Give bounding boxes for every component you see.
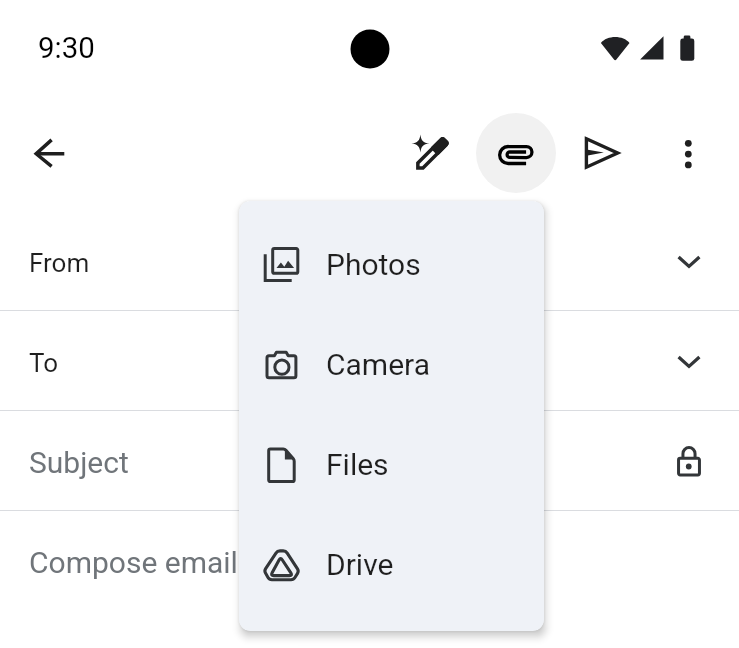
button[interactable]: Compose email xyxy=(0,511,739,610)
button[interactable]: Camera xyxy=(239,314,544,414)
staticText: Files xyxy=(326,447,389,482)
button[interactable]: To xyxy=(0,311,739,410)
button[interactable]: Back xyxy=(10,113,90,193)
button[interactable]: Expand recipients xyxy=(649,321,729,401)
staticText: From xyxy=(29,248,90,278)
staticText: 9:30 xyxy=(38,31,95,66)
button[interactable]: Drive xyxy=(239,514,544,614)
button[interactable]: Subject xyxy=(0,411,739,510)
staticText: Photos xyxy=(326,247,421,282)
button[interactable]: More options xyxy=(648,113,728,193)
staticText: Compose email xyxy=(29,545,238,580)
button[interactable]: Send xyxy=(562,113,642,193)
button[interactable]: Photos xyxy=(239,214,544,314)
button[interactable]: Files xyxy=(239,414,544,514)
button[interactable]: Smart compose xyxy=(390,112,470,192)
staticText: Subject xyxy=(29,445,129,480)
staticText: Camera xyxy=(326,347,430,382)
button[interactable]: Confidential mode xyxy=(649,421,729,501)
button[interactable]: From xyxy=(0,211,739,310)
staticText: Drive xyxy=(326,547,394,582)
button[interactable]: Expand recipients xyxy=(649,221,729,301)
button[interactable]: Attach file xyxy=(476,113,556,193)
staticText: To xyxy=(29,348,59,378)
